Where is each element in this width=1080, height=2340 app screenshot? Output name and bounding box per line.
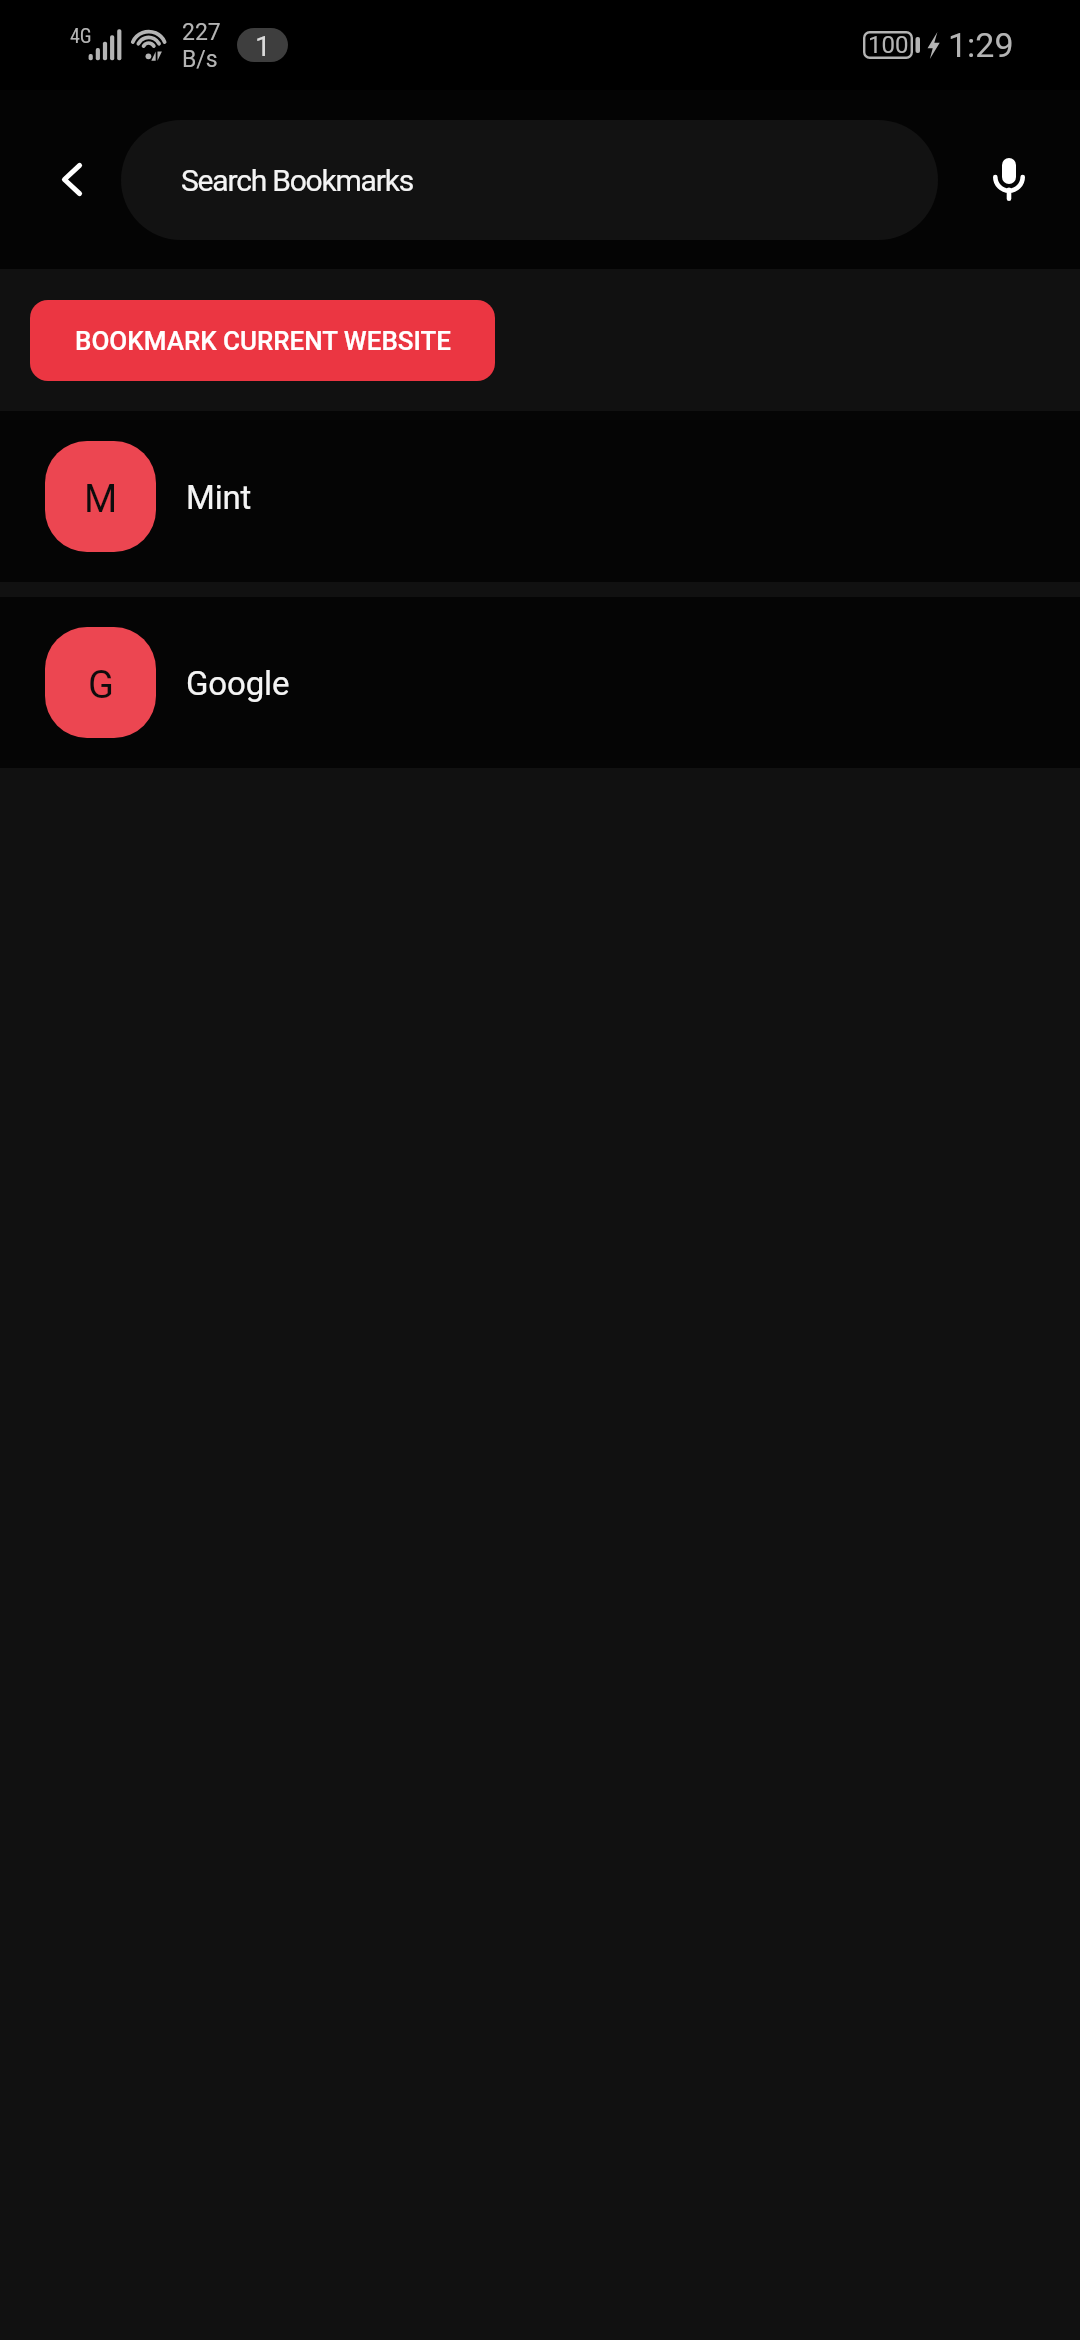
button[interactable]: BOOKMARK CURRENT WEBSITE xyxy=(30,300,495,381)
staticText: 100 xyxy=(868,31,909,59)
staticText: Mint xyxy=(186,478,252,517)
staticText: 1:29 xyxy=(948,25,1014,65)
button[interactable]: Back xyxy=(0,90,121,269)
button[interactable]: M xyxy=(0,411,1080,582)
staticText: B/s xyxy=(182,46,218,73)
staticText: G xyxy=(88,663,114,708)
staticText: Search Bookmarks xyxy=(181,163,413,198)
staticText: M xyxy=(84,477,118,522)
staticText: Google xyxy=(186,664,290,703)
staticText: 4G xyxy=(70,24,92,47)
button[interactable]: Voice search xyxy=(938,90,1080,269)
staticText: 227 xyxy=(182,19,221,46)
button[interactable]: G xyxy=(0,597,1080,768)
button[interactable]: Search Bookmarks xyxy=(121,120,938,240)
staticText: 1 xyxy=(255,30,271,62)
staticText: BOOKMARK CURRENT WEBSITE xyxy=(75,326,451,356)
